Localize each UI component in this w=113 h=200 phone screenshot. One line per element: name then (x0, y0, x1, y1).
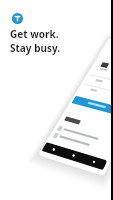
staticText: Stay busy. (10, 41, 61, 55)
button[interactable]: Thumbtack logo (12, 13, 23, 24)
staticText: Get work. (10, 27, 59, 41)
